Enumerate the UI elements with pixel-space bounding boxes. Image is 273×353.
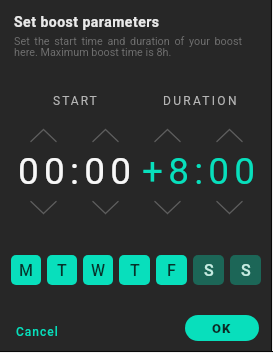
button[interactable]: Decrease [198,199,260,216]
button[interactable]: Decrease [13,199,74,216]
staticText: S [204,261,214,280]
staticText: Set boost parameters [14,14,160,30]
staticText: S [241,261,251,280]
staticText: Set the start time and duration of your … [14,35,242,59]
button[interactable]: Increase [13,127,74,144]
staticText: T [130,261,140,280]
staticText: OK [212,321,232,336]
button[interactable]: W [83,255,113,285]
staticText: Cancel [16,325,59,339]
staticText: M [19,261,33,280]
staticText: START [53,94,99,108]
button[interactable]: Decrease [74,199,136,216]
staticText: W [91,261,106,280]
staticText: 00:00 [18,150,137,193]
button[interactable]: Increase [198,127,260,144]
staticText: T [57,261,67,280]
button[interactable]: OK [185,315,259,341]
staticText: F [167,261,176,280]
staticText: DURATION [163,94,239,108]
button[interactable]: F [156,255,187,285]
button[interactable]: Increase [74,127,136,144]
button[interactable]: S [193,255,224,285]
button[interactable]: T [119,255,150,285]
button[interactable]: Increase [136,127,198,144]
button[interactable]: M [11,255,41,285]
button[interactable]: S [230,255,261,285]
button[interactable]: Cancel [12,321,63,343]
button[interactable]: Decrease [136,199,198,216]
staticText: +8:00 [142,150,261,193]
button[interactable]: T [47,255,77,285]
